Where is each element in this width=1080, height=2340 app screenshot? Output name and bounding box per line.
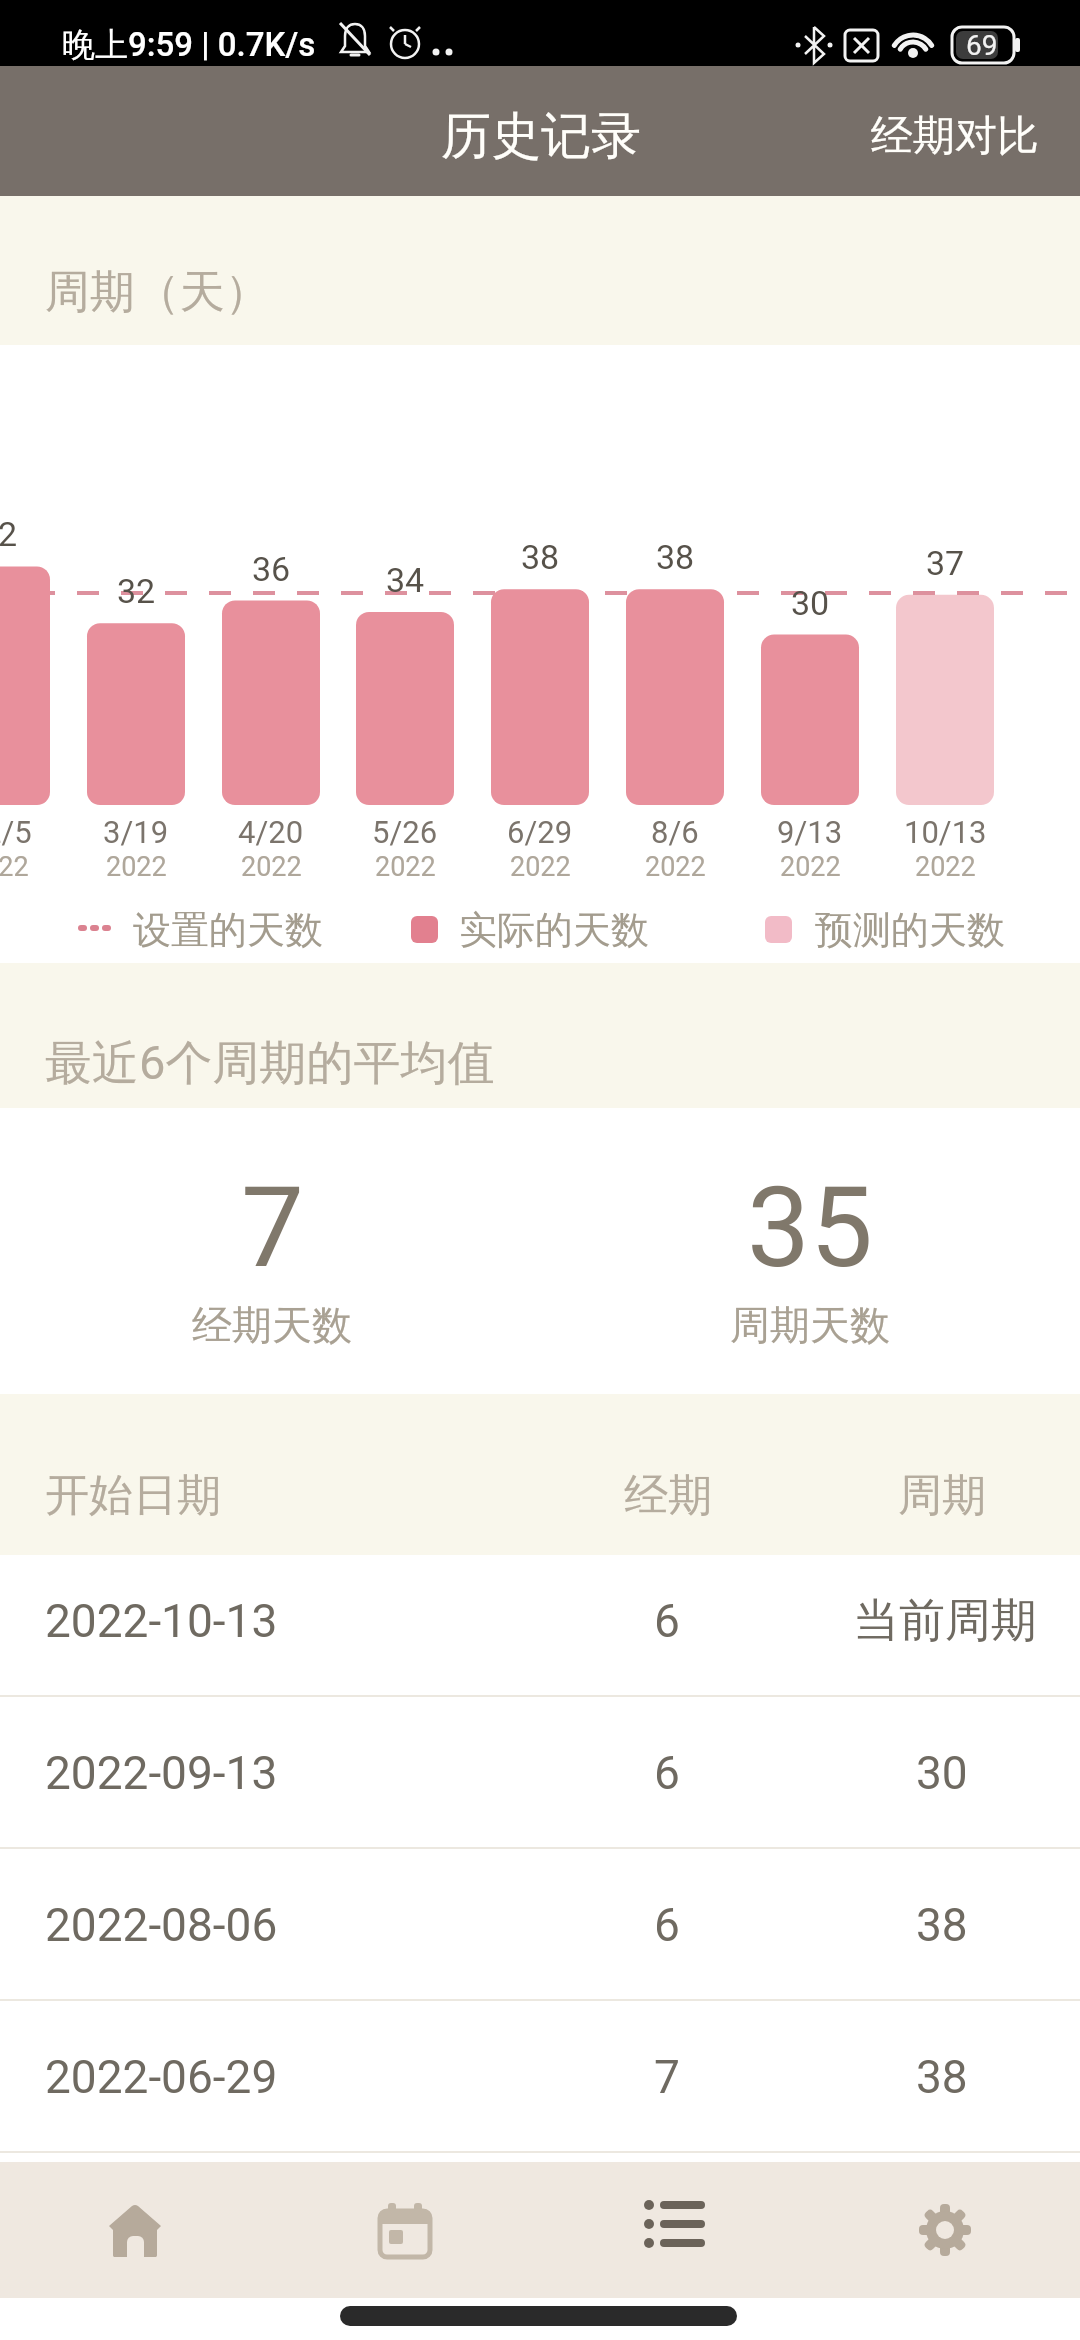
staticText: 42 bbox=[0, 514, 18, 554]
button[interactable] bbox=[270, 2162, 540, 2298]
button[interactable]: 经期对比 bbox=[855, 96, 1055, 176]
staticText: 10/13 bbox=[904, 814, 987, 850]
staticText: 2022-09-13 bbox=[45, 1746, 278, 1800]
button[interactable] bbox=[0, 1555, 1080, 1695]
staticText: 设置的天数 bbox=[133, 906, 323, 954]
staticText: 2022 bbox=[375, 851, 436, 883]
staticText: 5/26 bbox=[372, 814, 438, 850]
staticText: 34 bbox=[386, 560, 425, 600]
staticText: 8/6 bbox=[651, 814, 699, 850]
staticText: 2022-10-13 bbox=[45, 1594, 278, 1648]
staticText: 最近6个周期的平均值 bbox=[45, 1034, 495, 1093]
staticText: 2/5 bbox=[0, 814, 32, 850]
staticText: 3/19 bbox=[103, 814, 169, 850]
staticText: 当前周期 bbox=[853, 1592, 1037, 1650]
staticText: 4/20 bbox=[238, 814, 304, 850]
staticText: 30 bbox=[791, 583, 830, 623]
staticText: 2022-06-29 bbox=[45, 2050, 278, 2104]
staticText: 30 bbox=[916, 1746, 968, 1800]
staticText: 预测的天数 bbox=[815, 906, 1005, 954]
staticText: 36 bbox=[252, 549, 291, 589]
staticText: 2022-08-06 bbox=[45, 1898, 278, 1952]
staticText: 周期 bbox=[898, 1468, 986, 1523]
button[interactable] bbox=[0, 1859, 1080, 1999]
staticText: 7 bbox=[654, 2050, 680, 2104]
staticText: 2022 bbox=[915, 851, 976, 883]
staticText: 38 bbox=[521, 537, 560, 577]
staticText: 2022 bbox=[510, 851, 571, 883]
button[interactable] bbox=[0, 2011, 1080, 2151]
staticText: 周期（天） bbox=[45, 264, 270, 321]
staticText: 2022 bbox=[106, 851, 167, 883]
staticText: 2022 bbox=[645, 851, 706, 883]
staticText: 6/29 bbox=[507, 814, 573, 850]
staticText: 经期对比 bbox=[871, 110, 1039, 163]
staticText: 开始日期 bbox=[45, 1468, 221, 1523]
staticText: 35 bbox=[747, 1162, 873, 1293]
staticText: 32 bbox=[117, 571, 156, 611]
staticText: 历史记录 bbox=[441, 105, 641, 168]
staticText: 2022 bbox=[780, 851, 841, 883]
staticText: 周期天数 bbox=[730, 1300, 890, 1350]
staticText: 6 bbox=[654, 1898, 680, 1952]
staticText: 69 bbox=[966, 29, 998, 62]
staticText: 6 bbox=[654, 1594, 680, 1648]
staticText: 经期天数 bbox=[192, 1300, 352, 1350]
button[interactable] bbox=[0, 2162, 270, 2298]
button[interactable] bbox=[810, 2162, 1080, 2298]
staticText: 38 bbox=[916, 1898, 968, 1952]
staticText: 2022 bbox=[0, 851, 29, 883]
button[interactable] bbox=[540, 2162, 810, 2298]
staticText: 38 bbox=[916, 2050, 968, 2104]
button[interactable] bbox=[0, 1707, 1080, 1847]
staticText: 6 bbox=[654, 1746, 680, 1800]
staticText: 37 bbox=[926, 543, 965, 583]
staticText: 2022 bbox=[241, 851, 302, 883]
staticText: 晚上9:59 | 0.7K/s bbox=[62, 24, 316, 66]
staticText: 7 bbox=[241, 1162, 304, 1293]
staticText: 38 bbox=[656, 537, 695, 577]
staticText: 实际的天数 bbox=[459, 906, 649, 954]
staticText: 经期 bbox=[624, 1468, 712, 1523]
staticText: 9/13 bbox=[777, 814, 843, 850]
